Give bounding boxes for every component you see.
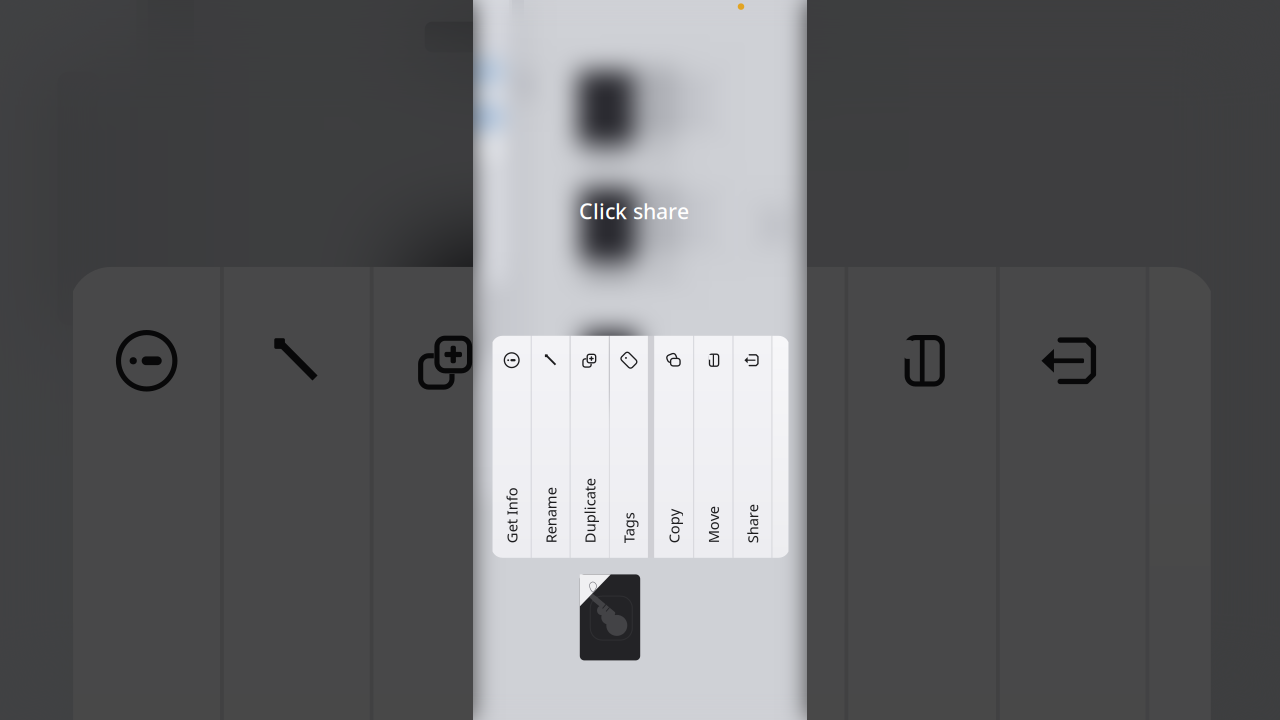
staticText: Tags: [613, 518, 644, 537]
staticText: Duplicate: [557, 501, 622, 520]
button[interactable]: Tags: [610, 336, 648, 558]
staticText: Get Info: [484, 505, 540, 525]
button[interactable]: Rename: [532, 336, 570, 558]
button[interactable]: Duplicate: [571, 336, 609, 558]
staticText: Get Info: [484, 505, 540, 525]
staticText: Rename: [523, 505, 579, 525]
staticText: Duplicate: [557, 501, 622, 520]
staticText: Share: [733, 514, 772, 533]
staticText: Click share: [579, 197, 689, 225]
button[interactable]: Rename: [532, 336, 570, 558]
button[interactable]: Share: [733, 336, 771, 558]
button[interactable]: Get Info: [493, 336, 531, 558]
button[interactable]: Tags: [610, 336, 648, 558]
staticText: Share: [733, 514, 772, 533]
staticText: Copy: [657, 516, 691, 536]
staticText: Move: [695, 515, 732, 534]
button[interactable]: Duplicate: [571, 336, 609, 558]
staticText: Click share: [579, 197, 689, 225]
staticText: Tags: [613, 518, 644, 537]
staticText: Copy: [657, 516, 691, 536]
button[interactable]: Move: [694, 336, 733, 558]
button[interactable]: Copy: [654, 336, 693, 558]
button[interactable]: Copy: [654, 336, 693, 558]
button[interactable]: Move: [694, 336, 733, 558]
staticText: Rename: [523, 505, 579, 525]
staticText: Move: [695, 515, 732, 534]
button[interactable]: Get Info: [493, 336, 531, 558]
button[interactable]: Share: [733, 336, 771, 558]
